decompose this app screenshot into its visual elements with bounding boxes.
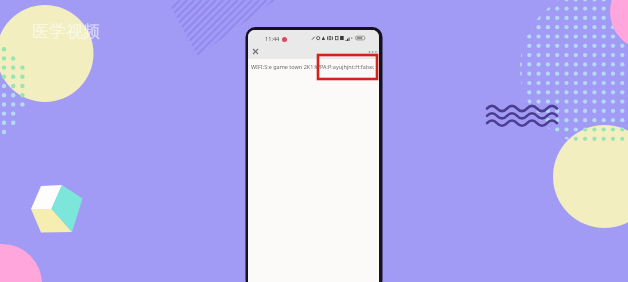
staticText: 11:44 [265,35,280,43]
button[interactable]: More options [365,45,378,58]
staticText: 医学视频 [32,21,100,42]
button[interactable]: Close [249,45,262,58]
staticText: WIFI:S:e game town 2K1:WPA:P:ayujhjnt:H:… [251,63,375,70]
